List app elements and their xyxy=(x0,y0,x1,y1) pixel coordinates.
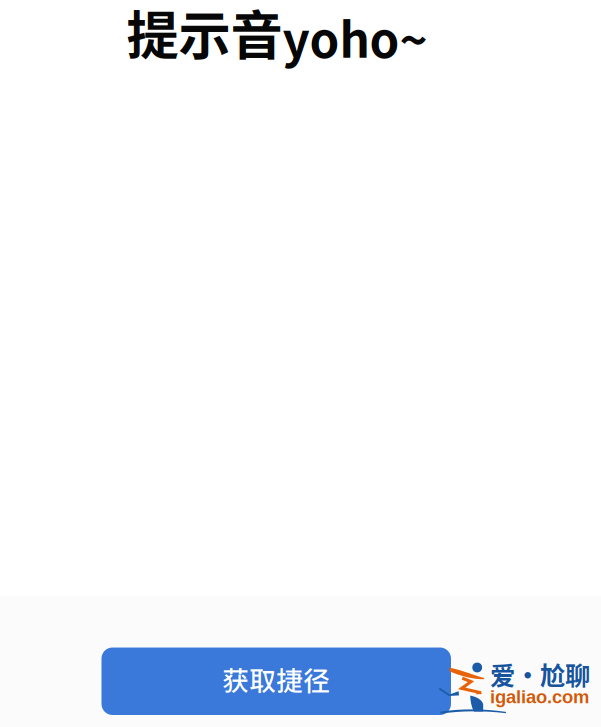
button[interactable]: 获取捷径 xyxy=(101,647,451,715)
staticText: 获取捷径 xyxy=(222,659,330,698)
staticText: 爱·尬聊 xyxy=(490,655,590,692)
staticText: 提示音yoho~ xyxy=(126,0,427,71)
staticText: igaliao.com xyxy=(490,686,589,707)
